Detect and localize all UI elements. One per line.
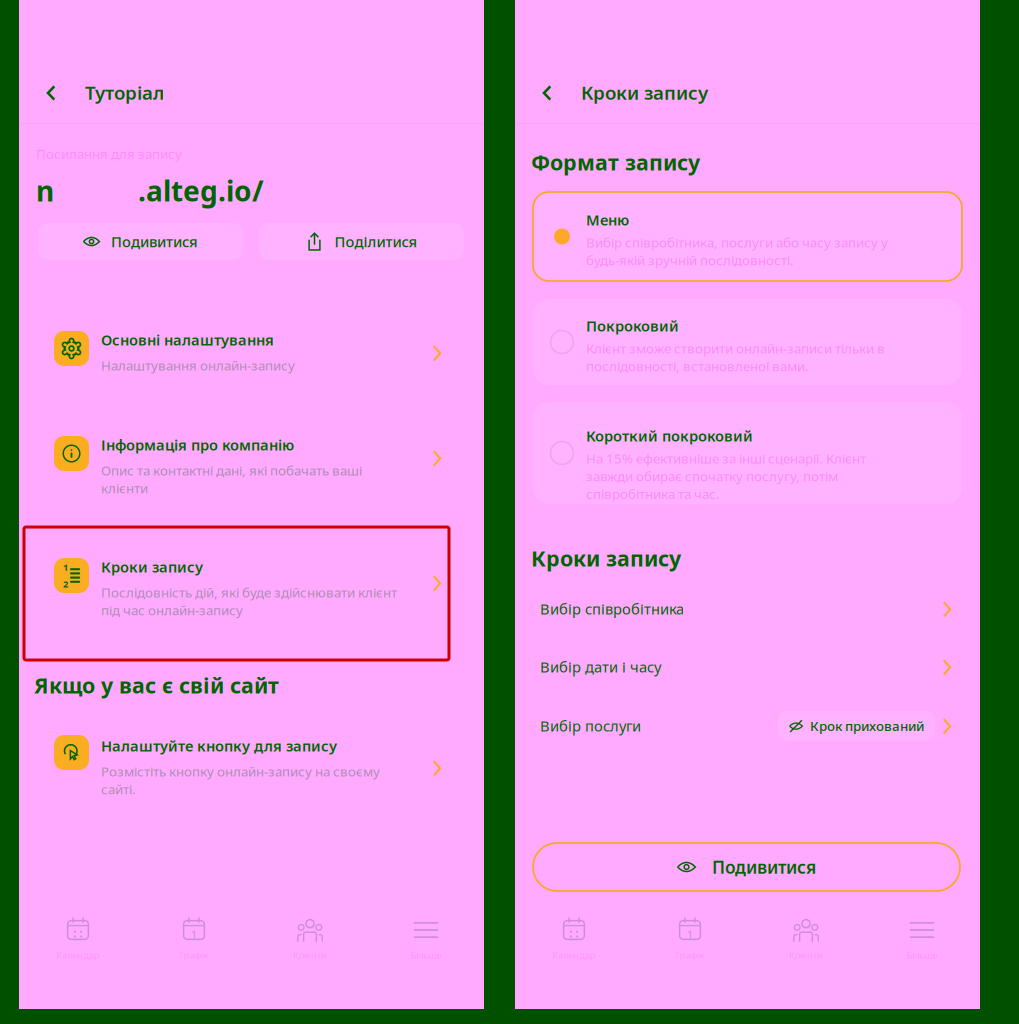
staticText: Якщо у вас є свій сайт xyxy=(34,671,279,699)
button[interactable]: Календар xyxy=(516,917,632,973)
button[interactable]: Налаштуйте кнопку для запису xyxy=(19,718,484,840)
staticText: Налаштування онлайн-запису xyxy=(101,356,295,374)
button[interactable]: Клієнти xyxy=(252,917,368,973)
staticText: Інформація про компанію xyxy=(101,435,294,454)
button[interactable]: 1 xyxy=(19,527,484,660)
staticText: Основні налаштування xyxy=(101,330,274,349)
staticText: Більше xyxy=(906,949,937,961)
button[interactable]: Поділитися xyxy=(259,223,464,260)
staticText: Клієнти xyxy=(789,949,823,961)
staticText: Покроковий xyxy=(586,316,679,335)
button[interactable]: Клієнти xyxy=(748,917,864,973)
button[interactable]: Інформація про компанію xyxy=(19,405,484,527)
staticText: Туторіал xyxy=(85,80,164,105)
staticText: Крок прихований xyxy=(810,717,924,735)
staticText: Опис та контактні дані, які побачать ваш… xyxy=(101,461,362,497)
button[interactable]: Вибір послуги xyxy=(515,695,980,753)
button[interactable]: Вибір співробітника xyxy=(515,578,980,636)
staticText: Формат запису xyxy=(531,148,700,176)
staticText: Послідовність дій, які буде здійснювати … xyxy=(101,583,397,619)
button[interactable]: Більше xyxy=(368,917,484,973)
button[interactable]: Календар xyxy=(20,917,136,973)
staticText: Меню xyxy=(586,210,629,229)
staticText: Вибір співробітника xyxy=(540,599,684,618)
staticText: Більше xyxy=(410,949,441,961)
staticText: Клієнти xyxy=(293,949,327,961)
button[interactable]: Back xyxy=(31,73,71,113)
staticText: Кроки запису xyxy=(531,544,681,572)
button[interactable]: 1 xyxy=(136,917,252,973)
button[interactable]: Подивитися xyxy=(38,223,243,260)
staticText: Графік xyxy=(179,949,208,961)
staticText: Короткий покроковий xyxy=(586,426,753,445)
staticText: Кроки запису xyxy=(581,80,708,105)
button[interactable]: Подивитися xyxy=(533,843,960,891)
staticText: Кроки запису xyxy=(101,557,203,576)
button[interactable]: Back xyxy=(527,73,567,113)
staticText: 1 xyxy=(191,927,197,941)
button[interactable]: Більше xyxy=(864,917,980,973)
staticText: Розмістіть кнопку онлайн-запису на своєм… xyxy=(101,762,380,798)
staticText: Поділитися xyxy=(334,232,417,251)
button[interactable]: 1 xyxy=(632,917,748,973)
staticText: На 15% ефективніше за інші сценарії. Клі… xyxy=(586,449,866,503)
staticText: Вибір послуги xyxy=(540,716,641,735)
staticText: Вибір дати і часу xyxy=(540,657,661,676)
staticText: Посилання для запису xyxy=(36,145,182,163)
staticText: Календар xyxy=(552,949,596,961)
staticText: 1 xyxy=(687,927,693,941)
staticText: 2 xyxy=(63,578,68,590)
staticText: Календар xyxy=(56,949,100,961)
staticText: Подивитися xyxy=(712,855,816,878)
staticText: n .alteg.io/ xyxy=(36,172,264,209)
staticText: Подивитися xyxy=(111,232,198,251)
staticText: Налаштуйте кнопку для запису xyxy=(101,736,337,755)
button[interactable]: Покроковий xyxy=(533,299,962,385)
staticText: Клієнт зможе створити онлайн-записи тіль… xyxy=(586,339,885,375)
staticText: 1 xyxy=(63,561,68,573)
button[interactable]: Меню xyxy=(533,192,962,281)
button[interactable]: Короткий покроковий xyxy=(533,402,962,504)
staticText: Графік xyxy=(675,949,704,961)
button[interactable]: Основні налаштування xyxy=(19,300,484,404)
staticText: Вибір співробітника, послуги або часу за… xyxy=(586,233,888,269)
button[interactable]: Вибір дати і часу xyxy=(515,636,980,694)
